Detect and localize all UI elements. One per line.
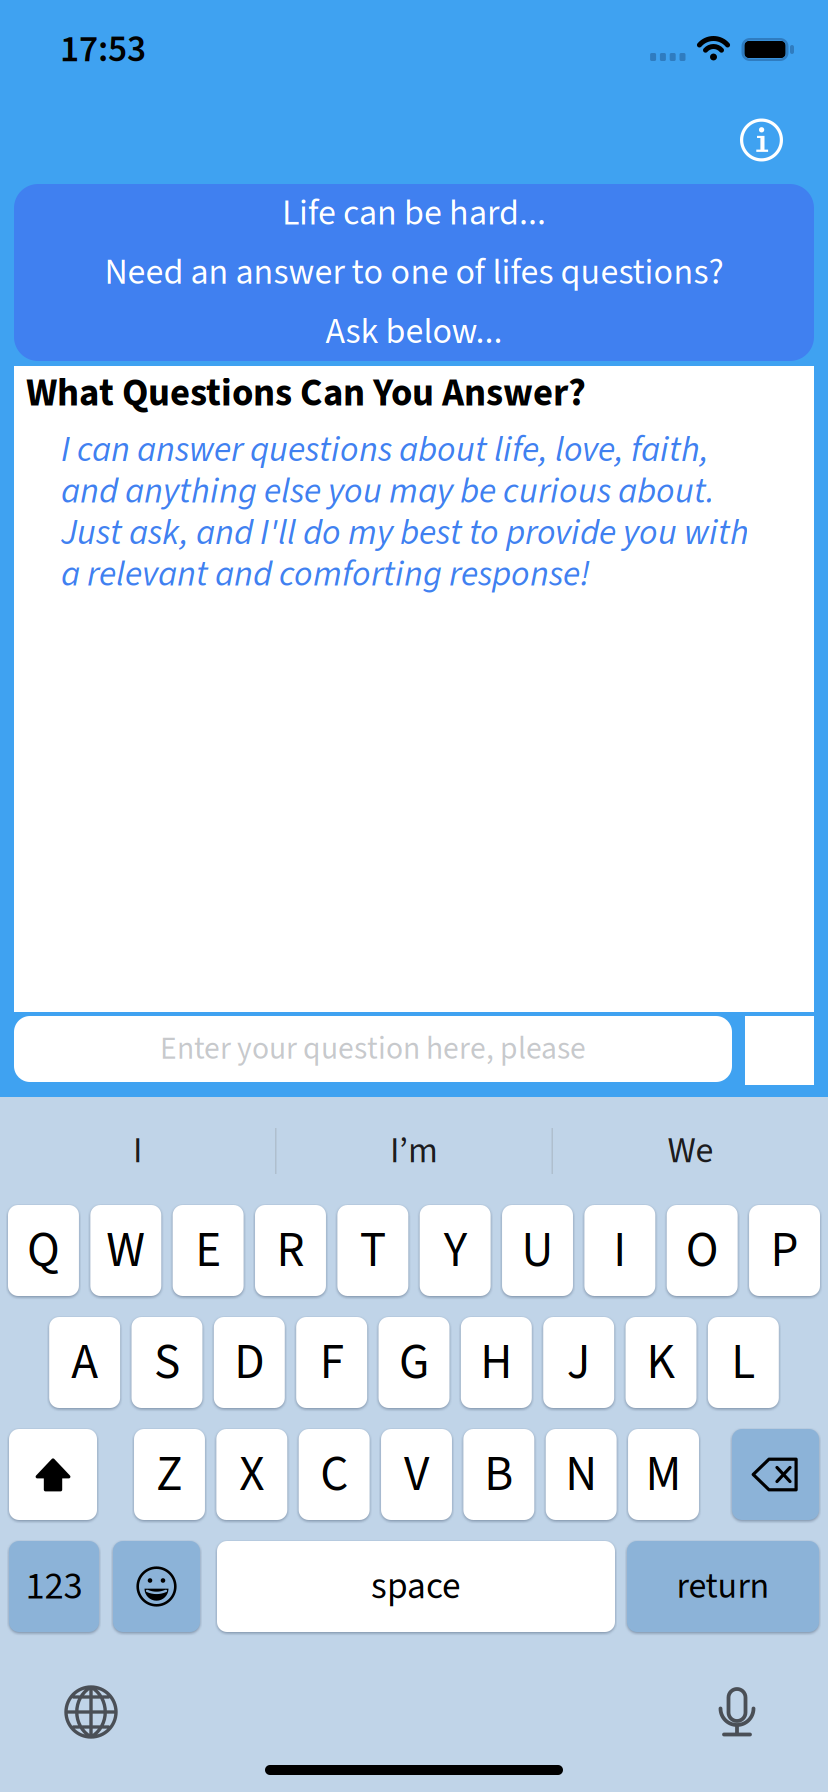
staticText: L — [731, 1327, 755, 1398]
button[interactable]: space — [217, 1541, 615, 1632]
button[interactable]: Info — [740, 118, 783, 161]
button[interactable]: V — [381, 1429, 452, 1520]
staticText: E — [195, 1215, 221, 1286]
button[interactable]: Y — [420, 1205, 491, 1296]
button[interactable]: A — [49, 1317, 120, 1408]
staticText: space — [371, 1560, 461, 1613]
staticText: 123 — [25, 1559, 82, 1614]
staticText: D — [234, 1327, 264, 1398]
staticText: P — [770, 1215, 798, 1286]
button[interactable]: O — [667, 1205, 738, 1296]
staticText: K — [646, 1327, 675, 1398]
button[interactable]: R — [255, 1205, 326, 1296]
staticText: S — [154, 1327, 180, 1398]
button[interactable]: B — [463, 1429, 534, 1520]
staticText: 17:53 — [60, 23, 146, 76]
staticText: Ask below... — [325, 306, 502, 357]
button[interactable]: Dictate — [697, 1672, 777, 1752]
staticText: Life can be hard... — [282, 188, 546, 239]
staticText: I — [133, 1125, 142, 1177]
staticText: H — [480, 1327, 512, 1398]
staticText: M — [645, 1439, 681, 1510]
button[interactable]: 123 — [9, 1541, 99, 1632]
button[interactable]: N — [546, 1429, 617, 1520]
button[interactable]: F — [296, 1317, 367, 1408]
staticText: Y — [444, 1215, 467, 1286]
button[interactable]: We — [553, 1097, 828, 1205]
button[interactable]: Emoji — [113, 1541, 200, 1632]
staticText: I’m — [390, 1125, 438, 1177]
staticText: B — [484, 1439, 513, 1510]
staticText: I — [613, 1215, 626, 1286]
button[interactable]: P — [749, 1205, 820, 1296]
staticText: R — [276, 1215, 304, 1286]
staticText: Need an answer to one of lifes questions… — [104, 247, 723, 298]
staticText: A — [71, 1327, 98, 1398]
button[interactable]: S — [131, 1317, 202, 1408]
button[interactable]: U — [502, 1205, 573, 1296]
staticText: U — [521, 1215, 553, 1286]
staticText: X — [239, 1439, 264, 1510]
button[interactable]: Q — [8, 1205, 79, 1296]
button[interactable]: M — [628, 1429, 699, 1520]
button[interactable]: D — [214, 1317, 285, 1408]
button[interactable]: E — [173, 1205, 244, 1296]
staticText: Enter your question here, please — [160, 1026, 586, 1071]
button[interactable]: L — [708, 1317, 779, 1408]
staticText: V — [404, 1439, 429, 1510]
button[interactable]: Enter your question here, please — [14, 1016, 732, 1082]
button[interactable]: X — [216, 1429, 287, 1520]
button[interactable]: Z — [134, 1429, 205, 1520]
staticText: I can answer questions about life, love,… — [61, 424, 749, 600]
staticText: Q — [27, 1215, 60, 1286]
staticText: O — [686, 1215, 719, 1286]
staticText: Z — [156, 1439, 183, 1510]
button[interactable]: Next keyboard — [51, 1672, 131, 1752]
staticText: T — [360, 1215, 386, 1286]
staticText: N — [565, 1439, 597, 1510]
staticText: C — [320, 1439, 348, 1510]
staticText: W — [106, 1215, 145, 1286]
staticText: What Questions Can You Answer? — [26, 366, 586, 421]
button[interactable]: I — [584, 1205, 655, 1296]
button[interactable]: I’m — [276, 1097, 552, 1205]
button[interactable]: G — [378, 1317, 449, 1408]
button[interactable]: C — [299, 1429, 370, 1520]
staticText: J — [567, 1327, 591, 1398]
button[interactable]: I — [0, 1097, 275, 1205]
staticText: F — [320, 1327, 344, 1398]
button[interactable]: W — [90, 1205, 161, 1296]
button[interactable]: K — [626, 1317, 696, 1408]
button[interactable]: Shift — [9, 1429, 97, 1520]
button[interactable]: Delete — [732, 1429, 819, 1520]
button[interactable]: H — [461, 1317, 532, 1408]
staticText: G — [399, 1327, 429, 1398]
staticText: We — [667, 1125, 713, 1177]
staticText: return — [676, 1561, 769, 1612]
button[interactable]: return — [627, 1541, 819, 1632]
button[interactable]: T — [337, 1205, 408, 1296]
button[interactable]: J — [543, 1317, 614, 1408]
